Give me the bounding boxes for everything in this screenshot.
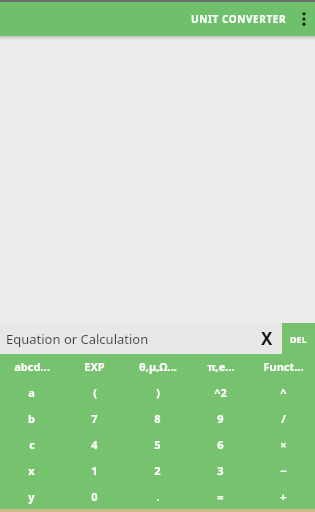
button[interactable]: θ,μ,Ω... — [126, 354, 189, 379]
staticText: b — [28, 411, 35, 426]
button[interactable]: x — [0, 457, 63, 483]
button[interactable]: Clear — [252, 323, 282, 354]
staticText: ^2 — [214, 385, 227, 400]
staticText: a — [28, 385, 35, 400]
button[interactable]: Funct... — [252, 354, 315, 379]
staticText: abcd... — [14, 359, 50, 374]
staticText: 2 — [154, 463, 161, 478]
button[interactable]: 0 — [63, 483, 126, 509]
button[interactable]: ^ — [252, 379, 315, 405]
button[interactable]: ( — [63, 379, 126, 405]
staticText: y — [28, 489, 35, 504]
staticText: c — [29, 437, 35, 452]
button[interactable]: 6 — [189, 431, 252, 457]
staticText: x — [28, 463, 35, 478]
button[interactable]: 3 — [189, 457, 252, 483]
staticText: EXP — [84, 359, 105, 374]
staticText: 3 — [217, 463, 224, 478]
staticText: 0 — [91, 489, 98, 504]
staticText: = — [217, 489, 224, 504]
staticText: 9 — [217, 411, 224, 426]
staticText: 7 — [91, 411, 98, 426]
button[interactable]: More options — [293, 2, 315, 36]
button[interactable]: = — [189, 483, 252, 509]
button[interactable]: a — [0, 379, 63, 405]
button[interactable]: 2 — [126, 457, 189, 483]
button[interactable]: y — [0, 483, 63, 509]
staticText: 5 — [154, 437, 161, 452]
staticText: ^ — [280, 385, 287, 400]
staticText: − — [280, 463, 287, 478]
button[interactable]: − — [252, 457, 315, 483]
button[interactable]: 4 — [63, 431, 126, 457]
staticText: 1 — [91, 463, 98, 478]
staticText: θ,μ,Ω... — [139, 359, 177, 374]
staticText: ( — [93, 385, 97, 400]
button[interactable]: UNIT CONVERTER — [185, 6, 293, 32]
button[interactable]: + — [252, 483, 315, 509]
button[interactable]: / — [252, 405, 315, 431]
staticText: π,e... — [207, 359, 235, 374]
button[interactable]: c — [0, 431, 63, 457]
button[interactable]: abcd... — [0, 354, 63, 379]
button[interactable]: × — [252, 431, 315, 457]
staticText: 6 — [217, 437, 224, 452]
button[interactable]: DEL — [282, 323, 315, 354]
button[interactable]: ) — [126, 379, 189, 405]
button[interactable]: π,e... — [189, 354, 252, 379]
staticText: DEL — [290, 333, 307, 345]
button[interactable]: Equation or Calculation — [0, 323, 282, 354]
staticText: UNIT CONVERTER — [191, 12, 287, 26]
button[interactable]: EXP — [63, 354, 126, 379]
staticText: Funct... — [263, 359, 304, 374]
staticText: 8 — [154, 411, 161, 426]
staticText: Equation or Calculation — [6, 330, 252, 348]
staticText: 4 — [91, 437, 98, 452]
staticText: ) — [156, 385, 160, 400]
staticText: + — [280, 489, 287, 504]
button[interactable]: 7 — [63, 405, 126, 431]
staticText: . — [156, 489, 160, 504]
button[interactable]: ^2 — [189, 379, 252, 405]
staticText: × — [280, 437, 287, 452]
button[interactable]: 5 — [126, 431, 189, 457]
staticText: X — [261, 327, 273, 350]
button[interactable]: 1 — [63, 457, 126, 483]
button[interactable]: 8 — [126, 405, 189, 431]
button[interactable]: 9 — [189, 405, 252, 431]
button[interactable]: b — [0, 405, 63, 431]
button[interactable]: . — [126, 483, 189, 509]
staticText: / — [281, 411, 286, 426]
